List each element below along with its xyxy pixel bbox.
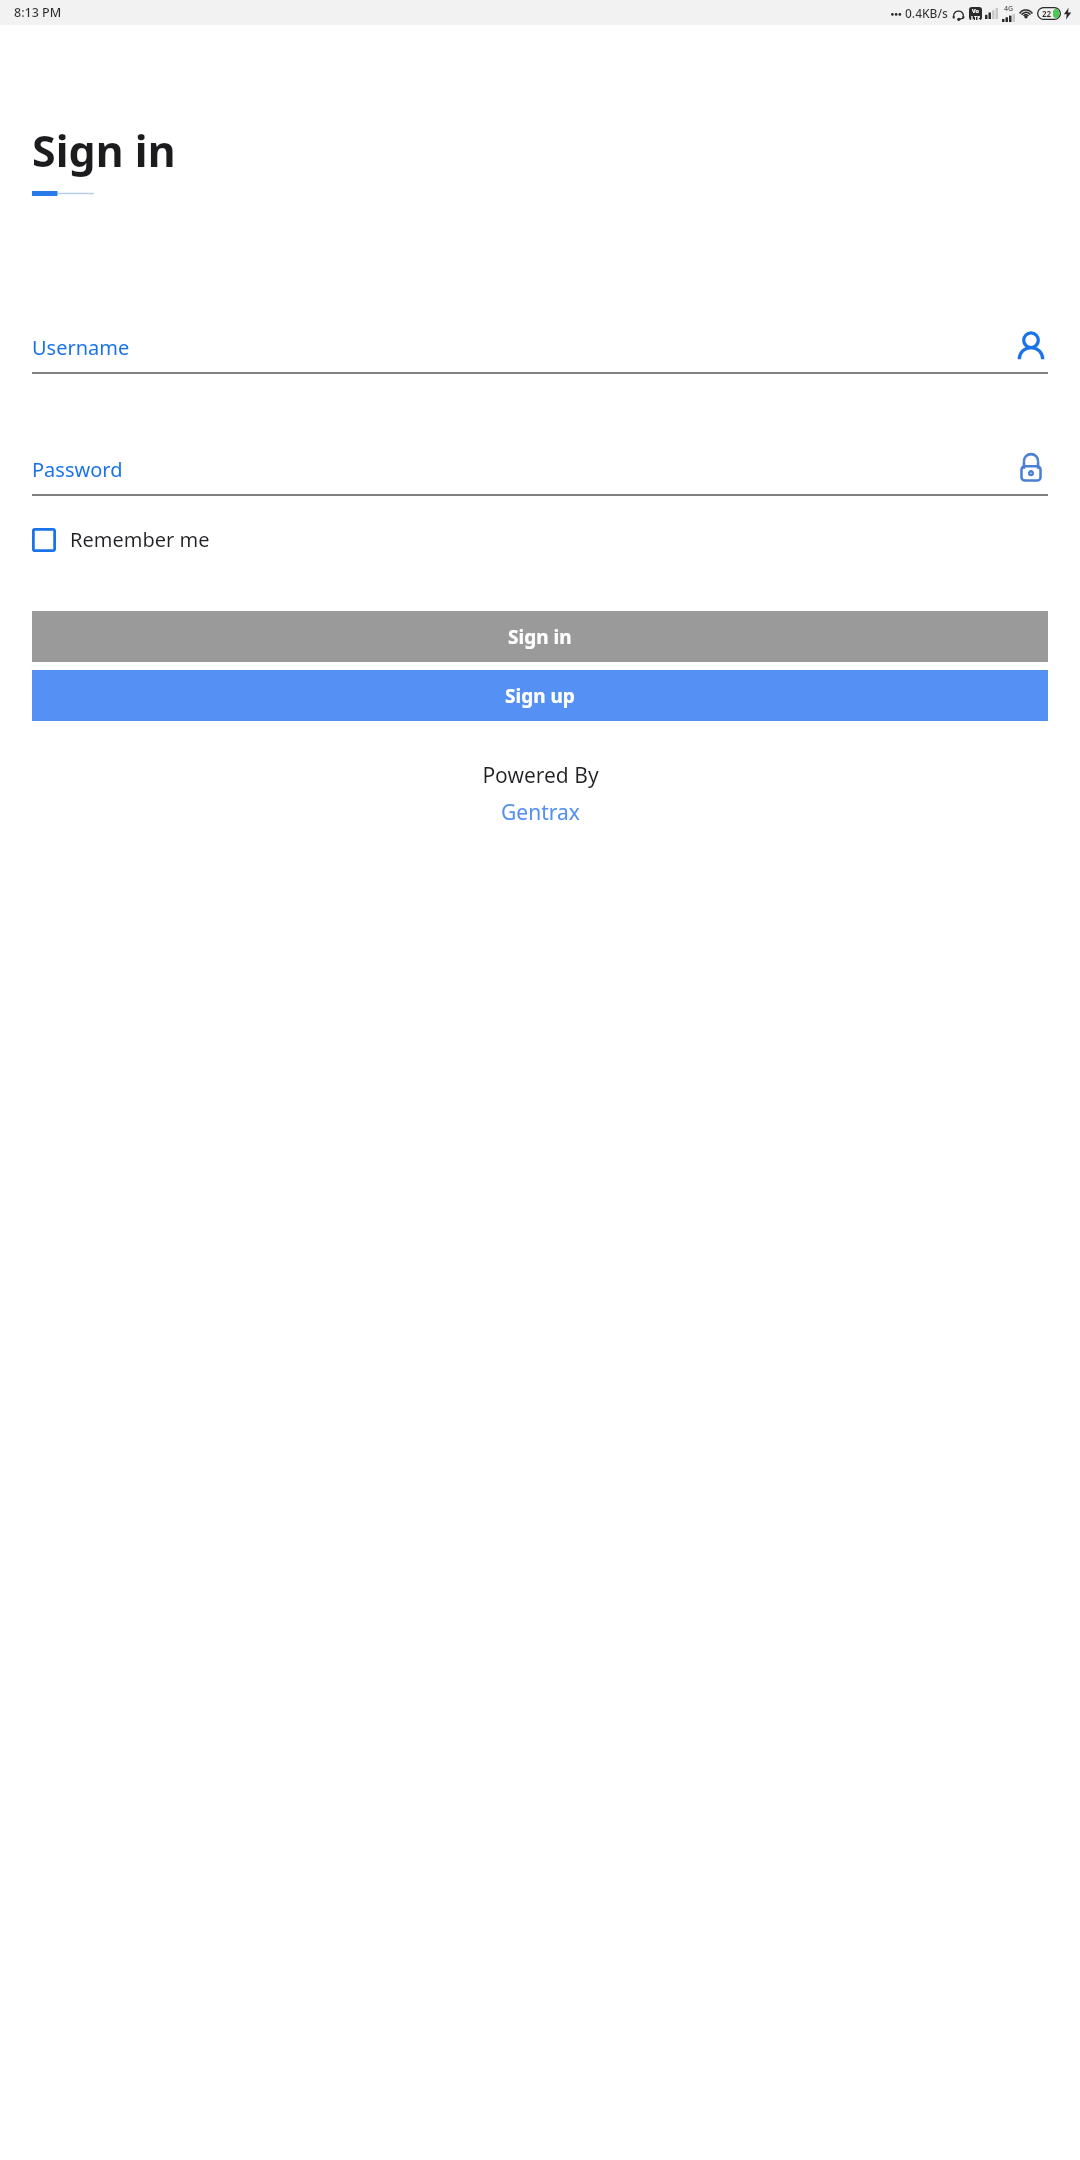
staticText: Password (32, 456, 1014, 483)
staticText: Remember me (70, 526, 210, 553)
staticText: Sign up (505, 683, 575, 709)
staticText: LTE (971, 14, 981, 20)
button[interactable]: Remember me (32, 526, 210, 553)
staticText: 22 (1042, 8, 1052, 19)
staticText: 0.4KB/s (905, 5, 948, 21)
staticText: 8:13 PM (14, 4, 62, 21)
button[interactable]: Username (32, 330, 1048, 374)
button[interactable]: Password (32, 452, 1048, 496)
staticText: 4G (1004, 4, 1014, 14)
staticText: Sign in (508, 624, 572, 650)
other: Username (1014, 330, 1048, 364)
staticText: Sign in (32, 121, 176, 180)
button[interactable]: Gentrax (501, 798, 580, 827)
staticText: Username (32, 334, 1014, 361)
staticText: Vo (972, 7, 979, 14)
button[interactable]: Sign in (32, 611, 1048, 662)
staticText: Powered By (482, 761, 599, 790)
button[interactable]: Sign up (32, 670, 1048, 721)
other: Password (1014, 452, 1048, 486)
